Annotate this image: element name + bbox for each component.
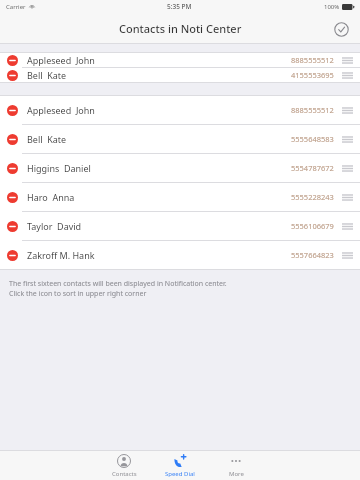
button[interactable]: Remove Taylor David — [7, 221, 18, 232]
button[interactable]: Remove Haro Anna — [7, 192, 18, 203]
staticText: 8885555512 — [291, 105, 334, 115]
button[interactable]: Sort contacts — [330, 18, 352, 40]
button[interactable]: Reorder Haro Anna — [342, 193, 353, 202]
staticText: Click the icon to sort in upper right co… — [9, 289, 147, 299]
staticText: Higgins Daniel — [27, 162, 91, 174]
button[interactable]: Remove Appleseed John — [7, 55, 18, 66]
button[interactable]: Reorder Zakroff M. Hank — [342, 251, 353, 260]
staticText: Appleseed John — [27, 104, 95, 116]
staticText: Haro Anna — [27, 191, 75, 203]
staticText: 5555228243 — [291, 192, 334, 202]
button[interactable]: Remove Appleseed John — [0, 96, 360, 124]
button[interactable]: More — [208, 451, 264, 480]
button[interactable]: Reorder Bell Kate — [342, 135, 353, 144]
button[interactable]: Reorder Higgins Daniel — [342, 164, 353, 173]
button[interactable]: Remove Haro Anna — [0, 183, 360, 211]
staticText: Bell Kate — [27, 133, 67, 145]
staticText: The first sixteen contacts will been dis… — [9, 279, 227, 289]
button[interactable]: Reorder Taylor David — [342, 222, 353, 231]
staticText: Zakroff M. Hank — [27, 249, 95, 261]
staticText: 5:35 PM — [167, 2, 192, 11]
button[interactable]: Reorder Bell Kate — [342, 71, 353, 80]
staticText: Carrier — [6, 3, 26, 11]
button[interactable]: Reorder Appleseed John — [342, 106, 353, 115]
staticText: Bell Kate — [27, 69, 67, 81]
staticText: 5556106679 — [291, 221, 334, 231]
staticText: 100% — [324, 3, 340, 11]
staticText: 5554787672 — [291, 163, 334, 173]
staticText: 4155553695 — [291, 70, 334, 80]
button[interactable]: Remove Zakroff M. Hank — [7, 250, 18, 261]
button[interactable]: Remove Zakroff M. Hank — [0, 241, 360, 269]
button[interactable]: Remove Higgins Daniel — [7, 163, 18, 174]
button[interactable]: Remove Bell Kate — [7, 134, 18, 145]
staticText: Contacts in Noti Center — [119, 21, 242, 36]
button[interactable]: Speed Dial — [152, 451, 208, 480]
staticText: Appleseed John — [27, 54, 95, 66]
button[interactable]: Remove Bell Kate — [0, 68, 360, 82]
button[interactable]: Remove Higgins Daniel — [0, 154, 360, 182]
staticText: More — [229, 470, 244, 478]
staticText: 8885555512 — [291, 55, 334, 65]
button[interactable]: Reorder Appleseed John — [342, 56, 353, 65]
staticText: Contacts — [112, 470, 137, 478]
button[interactable]: Remove Appleseed John — [7, 105, 18, 116]
button[interactable]: Remove Appleseed John — [0, 53, 360, 67]
button[interactable]: Contacts — [96, 451, 152, 480]
button[interactable]: Remove Bell Kate — [7, 70, 18, 81]
staticText: Taylor David — [27, 220, 82, 232]
button[interactable]: Remove Taylor David — [0, 212, 360, 240]
staticText: 5555648583 — [291, 134, 334, 144]
staticText: Speed Dial — [165, 470, 195, 478]
staticText: 5557664823 — [291, 250, 334, 260]
button[interactable]: Remove Bell Kate — [0, 125, 360, 153]
